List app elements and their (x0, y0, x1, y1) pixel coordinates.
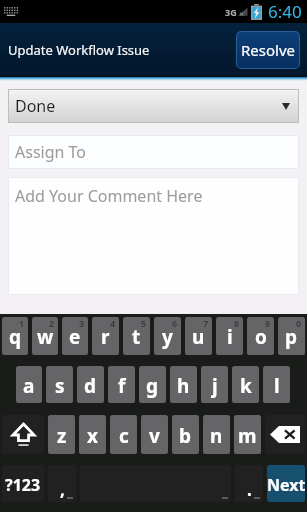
staticText: c (119, 423, 129, 449)
staticText: 9 (265, 317, 271, 329)
staticText: 0 (296, 317, 302, 329)
staticText: a (23, 373, 35, 399)
button[interactable]: w (32, 317, 58, 355)
button[interactable]: c (110, 415, 137, 454)
staticText: s (55, 373, 65, 399)
button[interactable]: x (79, 415, 106, 454)
staticText: Next (267, 474, 305, 496)
button[interactable]: d (77, 366, 104, 403)
button[interactable]: e (62, 317, 88, 355)
staticText: o (255, 324, 267, 350)
button[interactable]: Shift (2, 415, 44, 454)
staticText: 6 (172, 317, 178, 329)
staticText: f (118, 373, 126, 399)
button[interactable]: n (203, 415, 230, 454)
button[interactable]: y (154, 317, 181, 355)
button[interactable]: l (263, 366, 290, 403)
staticText: 8 (234, 317, 240, 329)
button[interactable]: r (92, 317, 119, 355)
button[interactable]: i (216, 317, 243, 355)
staticText: h (177, 373, 190, 399)
button[interactable]: f (108, 366, 135, 403)
staticText: ?123 (5, 474, 41, 496)
staticText: , (60, 478, 65, 501)
button[interactable]: q (2, 317, 28, 355)
staticText: 5 (141, 317, 147, 329)
staticText: v (149, 423, 160, 449)
staticText: t (132, 324, 141, 350)
button[interactable]: p (278, 317, 305, 355)
staticText: g (146, 373, 159, 399)
staticText: l (274, 373, 280, 399)
staticText: Update Workflow Issue (8, 41, 150, 59)
staticText: p (285, 324, 298, 350)
button[interactable]: h (170, 366, 197, 403)
button[interactable]: s (46, 366, 73, 403)
staticText: k (240, 373, 252, 399)
button[interactable]: v (141, 415, 168, 454)
staticText: e (69, 324, 81, 350)
staticText: 2 (49, 317, 55, 329)
button[interactable]: u (185, 317, 212, 355)
button[interactable]: Done (8, 89, 299, 123)
button[interactable]: j (201, 366, 228, 403)
staticText: 6:40 (268, 0, 302, 23)
button[interactable]: Add Your Comment Here (8, 177, 299, 295)
staticText: u (192, 324, 205, 350)
staticText: n (210, 423, 223, 449)
staticText: x (87, 423, 98, 449)
button[interactable]: t (123, 317, 150, 355)
staticText: Resolve (241, 40, 296, 60)
button[interactable]: Resolve (236, 31, 300, 69)
button[interactable]: Next (267, 465, 305, 502)
button[interactable]: a (16, 366, 42, 403)
staticText: i (227, 324, 233, 350)
staticText: 7 (203, 317, 209, 329)
button[interactable]: g (139, 366, 166, 403)
staticText: d (84, 373, 97, 399)
staticText: 1 (19, 317, 25, 329)
button[interactable]: o (247, 317, 274, 355)
staticText: y (162, 324, 173, 350)
button[interactable]: , (48, 465, 76, 502)
button[interactable]: ?123 (2, 465, 44, 502)
button[interactable]: b (172, 415, 199, 454)
button[interactable]: . (235, 465, 263, 502)
staticText: z (57, 423, 67, 449)
staticText: Done (15, 95, 56, 117)
button[interactable]: k (232, 366, 259, 403)
staticText: q (9, 324, 22, 350)
staticText: 3 (79, 317, 85, 329)
button[interactable]: Delete (265, 415, 305, 454)
staticText: w (37, 324, 54, 350)
staticText: . (247, 478, 252, 501)
staticText: 4 (110, 317, 116, 329)
staticText: b (179, 423, 192, 449)
button[interactable]: m (234, 415, 261, 454)
staticText: 3G (225, 6, 237, 18)
button[interactable]: Assign To (8, 135, 299, 169)
button[interactable]: z (48, 415, 75, 454)
staticText: m (238, 423, 257, 449)
staticText: Assign To (15, 141, 87, 163)
staticText: j (212, 373, 218, 399)
staticText: Add Your Comment Here (15, 185, 203, 207)
staticText: r (101, 324, 110, 350)
